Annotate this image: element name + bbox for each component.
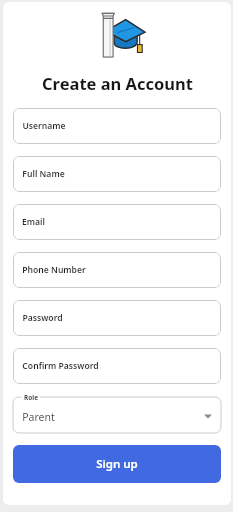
staticText: Password [22,312,63,324]
other: App logo: graduation cap [89,10,145,58]
button[interactable]: Sign up [13,445,221,483]
button[interactable]: Username [13,108,221,144]
staticText: Role [24,393,38,402]
button[interactable]: Phone Number [13,252,221,288]
button[interactable]: Password [13,300,221,336]
button[interactable]: Parent [13,397,221,433]
button[interactable]: Confirm Password [13,348,221,384]
staticText: Confirm Password [22,360,99,372]
staticText: Phone Number [22,264,86,276]
button[interactable]: Full Name [13,156,221,192]
staticText: Full Name [22,168,65,180]
button[interactable]: Email [13,204,221,240]
staticText: Parent [22,410,55,424]
staticText: Sign up [96,456,138,472]
staticText: Username [22,120,66,132]
staticText: Create an Account [42,72,193,94]
staticText: Email [22,216,45,228]
